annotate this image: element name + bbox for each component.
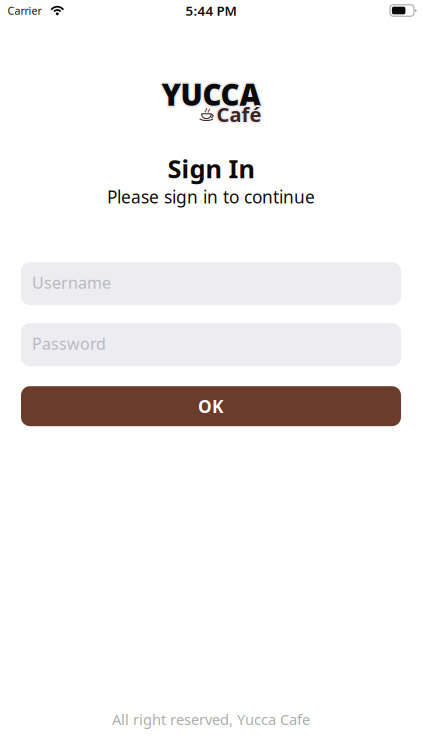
staticText: YUCCA	[161, 73, 260, 112]
staticText: YUCCA	[160, 74, 259, 113]
button[interactable]: Username	[21, 262, 401, 305]
staticText: YUCCA	[160, 76, 259, 115]
button[interactable]: Password	[21, 323, 401, 366]
staticText: Café	[216, 103, 261, 129]
staticText: Sign In	[167, 151, 254, 185]
staticText: Café	[216, 101, 261, 128]
staticText: Café	[215, 100, 260, 126]
staticText: Carrier	[7, 3, 41, 18]
staticText: YUCCA	[163, 76, 262, 115]
staticText: Café	[218, 101, 263, 128]
staticText: Café	[218, 100, 263, 126]
staticText: Username	[32, 272, 111, 293]
staticText: Please sign in to continue	[107, 185, 315, 208]
staticText: All right reserved, Yucca Cafe	[112, 709, 310, 729]
button[interactable]: OK	[21, 386, 401, 426]
staticText: Café	[215, 101, 260, 128]
staticText: 5:44 PM	[185, 2, 236, 19]
staticText: Café	[215, 102, 260, 129]
staticText: YUCCA	[161, 75, 260, 114]
staticText: YUCCA	[163, 75, 262, 114]
staticText: Café	[218, 102, 263, 129]
staticText: YUCCA	[163, 74, 262, 113]
staticText: YUCCA	[160, 75, 259, 114]
staticText: Password	[32, 333, 106, 354]
staticText: YUCCA	[161, 77, 260, 116]
staticText: Café	[216, 99, 261, 126]
staticText: OK	[198, 395, 224, 418]
